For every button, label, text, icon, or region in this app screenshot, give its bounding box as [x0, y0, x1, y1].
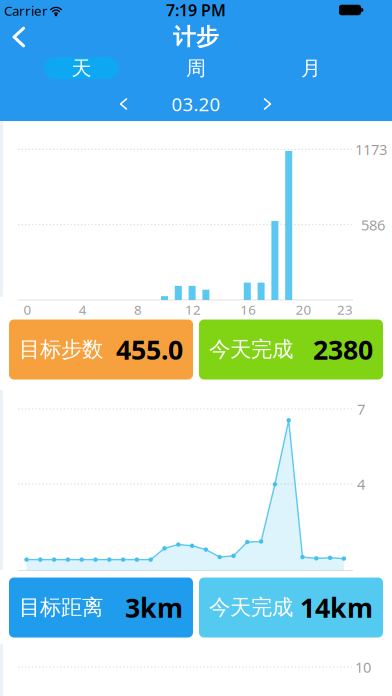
- button[interactable]: 今天完成: [199, 319, 383, 379]
- button[interactable]: [109, 91, 137, 117]
- staticText: 12: [185, 301, 201, 318]
- button[interactable]: [253, 91, 281, 117]
- staticText: 14km: [300, 590, 373, 625]
- staticText: 455.0: [116, 332, 183, 367]
- staticText: 1173: [355, 140, 387, 159]
- staticText: 23: [337, 301, 353, 318]
- staticText: 4: [79, 301, 87, 318]
- button[interactable]: 天: [44, 57, 118, 79]
- button[interactable]: 周: [159, 57, 233, 79]
- button[interactable]: 今天完成: [199, 577, 383, 637]
- staticText: 月: [301, 56, 321, 81]
- staticText: 7:19 PM: [166, 0, 226, 21]
- button[interactable]: 月: [274, 57, 348, 79]
- staticText: 20: [295, 301, 311, 318]
- button[interactable]: 03.20: [171, 92, 220, 116]
- staticText: 7: [357, 399, 365, 419]
- staticText: 3km: [125, 590, 183, 625]
- staticText: 8: [134, 301, 142, 318]
- button[interactable]: 目标距离: [9, 577, 193, 637]
- button[interactable]: [0, 21, 40, 53]
- staticText: 周: [186, 56, 206, 81]
- staticText: 目标步数: [19, 336, 103, 363]
- staticText: 今天完成: [209, 336, 293, 363]
- staticText: 03.20: [171, 92, 220, 116]
- staticText: 0: [23, 301, 31, 318]
- staticText: 16: [240, 301, 256, 318]
- staticText: 今天完成: [209, 594, 293, 621]
- button[interactable]: 目标步数: [9, 319, 193, 379]
- staticText: 目标距离: [19, 594, 103, 621]
- staticText: 天: [71, 56, 91, 81]
- staticText: 2380: [313, 332, 373, 367]
- staticText: 10: [355, 657, 371, 677]
- staticText: 计步: [173, 23, 219, 51]
- staticText: 4: [357, 474, 365, 494]
- staticText: 586: [361, 215, 385, 234]
- staticText: Carrier: [4, 2, 48, 19]
